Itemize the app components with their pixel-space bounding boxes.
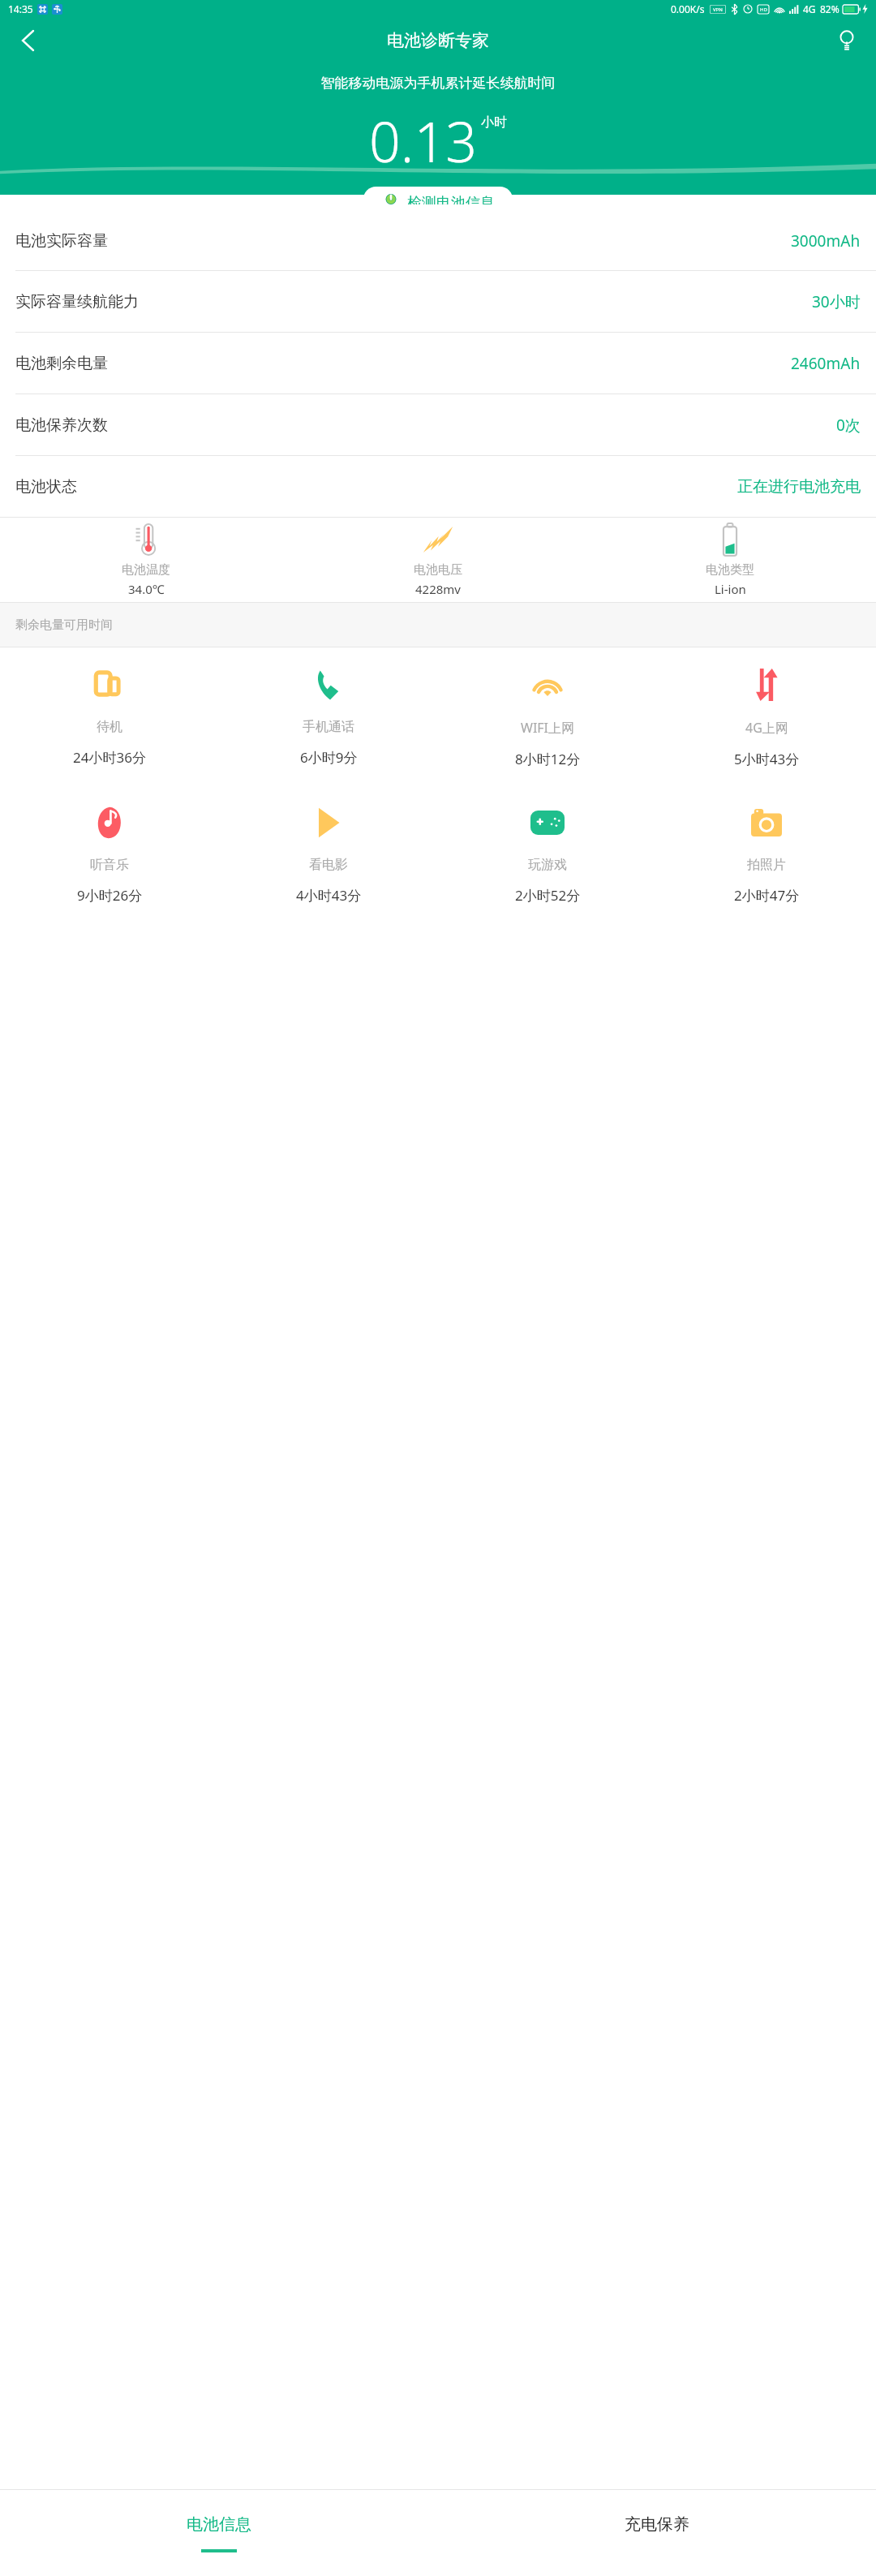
button[interactable]: 电池温度 bbox=[0, 518, 292, 602]
staticText: 剩余电量可用时间 bbox=[15, 617, 113, 633]
button[interactable]: 电池状态 bbox=[0, 456, 876, 517]
staticText: 2小时52分 bbox=[515, 886, 581, 905]
button[interactable]: 拍照片 bbox=[657, 785, 876, 923]
staticText: 34.0℃ bbox=[128, 581, 165, 597]
staticText: 电池保养次数 bbox=[15, 415, 108, 435]
staticText: VPN bbox=[713, 6, 723, 13]
staticText: 4G bbox=[803, 2, 816, 15]
button[interactable]: 电池剩余电量 bbox=[0, 333, 876, 393]
staticText: 手机通话 bbox=[303, 719, 354, 735]
button[interactable]: 电池保养次数 bbox=[0, 394, 876, 455]
staticText: 3000mAh bbox=[791, 230, 861, 252]
button[interactable]: 充电保养 bbox=[438, 2490, 876, 2576]
staticText: 智能移动电源为手机累计延长续航时间 bbox=[0, 75, 876, 92]
staticText: Li-ion bbox=[715, 581, 746, 597]
button[interactable]: 看电影 bbox=[219, 785, 438, 923]
button[interactable]: Tips bbox=[827, 21, 866, 60]
staticText: 电池剩余电量 bbox=[15, 354, 108, 373]
staticText: 电池电压 bbox=[414, 562, 462, 578]
staticText: 电池状态 bbox=[15, 477, 77, 497]
staticText: 8小时12分 bbox=[515, 750, 581, 768]
button[interactable]: 电池类型 bbox=[584, 518, 876, 602]
staticText: 充电保养 bbox=[625, 2514, 689, 2535]
staticText: 24小时36分 bbox=[73, 748, 146, 767]
staticText: 小时 bbox=[481, 114, 507, 131]
button[interactable]: 玩游戏 bbox=[438, 785, 657, 923]
staticText: 0.13 bbox=[369, 103, 478, 178]
staticText: 电池诊断专家 bbox=[387, 30, 489, 51]
staticText: 电池信息 bbox=[187, 2514, 251, 2535]
button[interactable]: 电池信息 bbox=[0, 2490, 438, 2576]
staticText: 4G上网 bbox=[745, 719, 788, 737]
button[interactable]: 实际容量续航能力 bbox=[0, 271, 876, 332]
staticText: HD bbox=[760, 6, 767, 13]
button[interactable]: Back bbox=[8, 21, 47, 60]
staticText: 玩游戏 bbox=[528, 857, 567, 873]
staticText: 正在进行电池充电 bbox=[737, 477, 861, 497]
staticText: WIFI上网 bbox=[521, 719, 575, 737]
staticText: 拍照片 bbox=[747, 857, 786, 873]
staticText: 电池实际容量 bbox=[15, 231, 108, 251]
staticText: 82% bbox=[820, 2, 839, 15]
staticText: 4小时43分 bbox=[296, 886, 362, 905]
staticText: 4228mv bbox=[415, 581, 461, 597]
button[interactable]: 4G上网 bbox=[657, 647, 876, 785]
button[interactable]: 电池电压 bbox=[292, 518, 584, 602]
staticText: 实际容量续航能力 bbox=[15, 292, 139, 312]
staticText: 5小时43分 bbox=[734, 750, 800, 768]
staticText: 6小时9分 bbox=[300, 748, 358, 767]
button[interactable]: 电池实际容量 bbox=[0, 212, 876, 270]
staticText: 14:35 bbox=[8, 2, 33, 15]
staticText: 检测电池信息 bbox=[407, 194, 495, 204]
button[interactable]: 待机 bbox=[0, 647, 219, 785]
staticText: 待机 bbox=[97, 719, 122, 735]
staticText: 2460mAh bbox=[791, 353, 861, 374]
button[interactable]: 检测电池信息 bbox=[363, 187, 513, 212]
button[interactable]: 听音乐 bbox=[0, 785, 219, 923]
button[interactable]: WIFI上网 bbox=[438, 647, 657, 785]
staticText: 看电影 bbox=[309, 857, 348, 873]
staticText: 2小时47分 bbox=[734, 886, 800, 905]
staticText: 30小时 bbox=[812, 291, 861, 312]
button[interactable]: 手机通话 bbox=[219, 647, 438, 785]
staticText: 0.00K/s bbox=[671, 2, 705, 15]
staticText: 0次 bbox=[836, 415, 861, 436]
staticText: 电池类型 bbox=[706, 562, 754, 578]
staticText: 电池温度 bbox=[122, 562, 170, 578]
staticText: 听音乐 bbox=[90, 857, 129, 873]
staticText: 9小时26分 bbox=[77, 886, 143, 905]
